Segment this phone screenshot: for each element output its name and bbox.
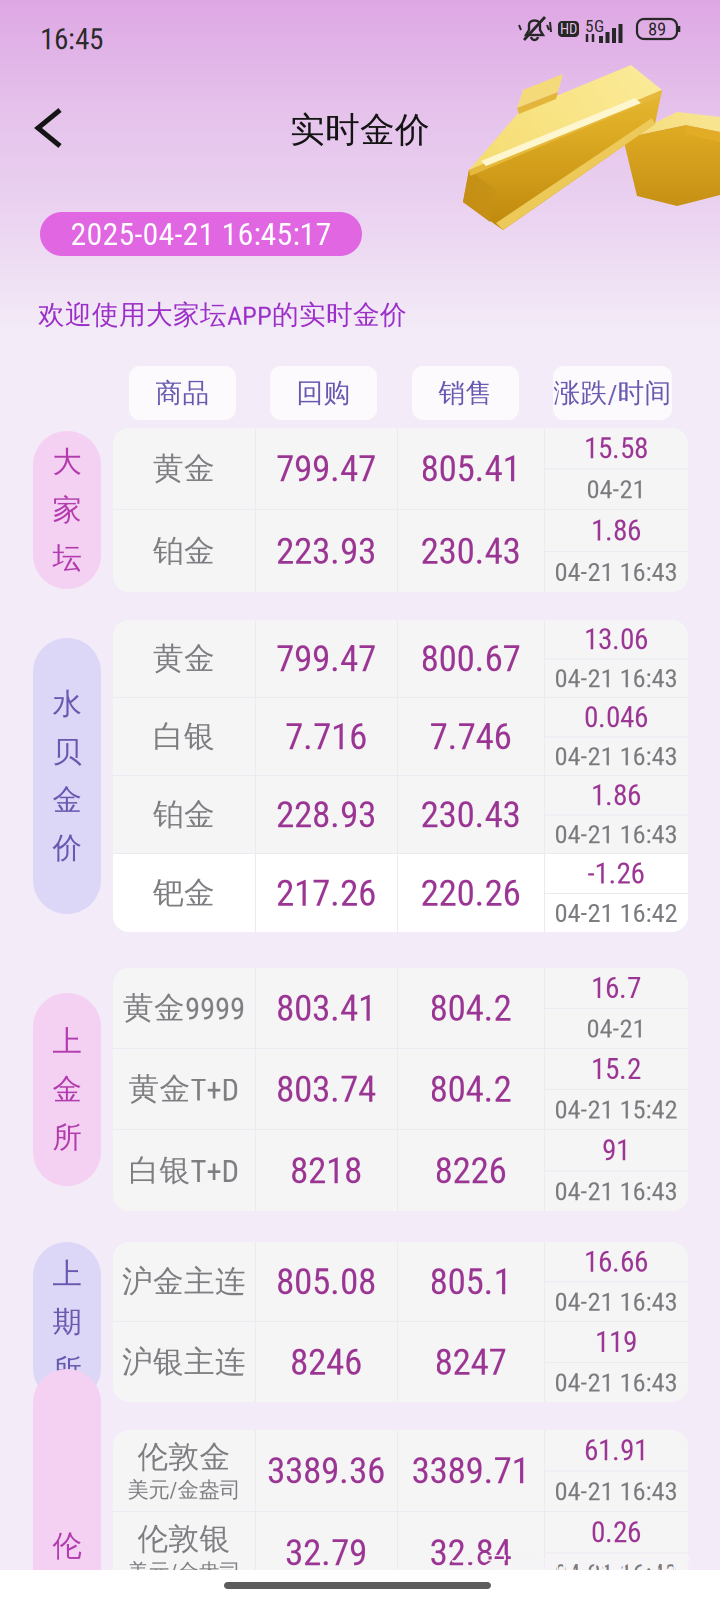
staticText: 坛 (52, 539, 81, 576)
staticText: 黄金T+D (128, 1070, 239, 1108)
staticText: 白银T+D (128, 1151, 239, 1190)
staticText: 230.43 (420, 529, 520, 573)
staticText: 欢迎使用大家坛APP的实时金价 (38, 298, 407, 332)
staticText: 美元/金盎司 (127, 1558, 240, 1585)
staticText: 13.06 (584, 622, 648, 656)
staticText: 钯金 (153, 874, 215, 912)
staticText: 价 (52, 829, 81, 866)
staticText: 803.41 (276, 986, 376, 1030)
staticText: 805.08 (276, 1260, 376, 1303)
staticText: 16.66 (584, 1245, 648, 1279)
staticText: 04-21 16:43 (554, 556, 677, 588)
staticText: 230.43 (420, 793, 520, 836)
staticText: 217.26 (276, 871, 376, 915)
staticText: 7.716 (285, 715, 367, 758)
staticText: 黄金 (153, 449, 215, 488)
staticText: 销售 (438, 376, 492, 410)
staticText: 沪金主连 (122, 1262, 246, 1301)
staticText: 大家坛@furong1107 (450, 1548, 691, 1585)
staticText: 所 (52, 1119, 81, 1156)
staticText: 805.41 (420, 447, 520, 490)
staticText: 804.2 (429, 986, 511, 1030)
staticText: 16:45 (40, 22, 103, 56)
button[interactable]: 回购 (270, 366, 377, 420)
staticText: 实时金价 (290, 108, 430, 152)
staticText: 04-21 16:43 (554, 1476, 677, 1507)
staticText: 黄金 (153, 639, 215, 678)
staticText: 04-21 16:43 (554, 1367, 677, 1398)
staticText: 伦敦金 (137, 1438, 230, 1476)
staticText: 800.67 (420, 637, 520, 680)
staticText: 04-21 (586, 474, 645, 505)
staticText: -1.26 (587, 856, 644, 891)
staticText: 8246 (290, 1340, 362, 1384)
staticText: 家 (52, 491, 81, 528)
staticText: 美元/金盎司 (127, 1476, 240, 1503)
staticText: 220.26 (420, 871, 520, 915)
button[interactable]: 销售 (412, 366, 519, 420)
staticText: 伦敦银 (137, 1520, 230, 1558)
staticText: 32.79 (285, 1531, 367, 1574)
staticText: 铂金 (153, 532, 215, 570)
staticText: 商品 (155, 376, 209, 410)
staticText: 223.93 (276, 529, 376, 573)
staticText: 89 (648, 18, 666, 40)
staticText: 119 (595, 1325, 637, 1359)
staticText: 228.93 (276, 793, 376, 836)
staticText: 04-21 16:42 (554, 897, 677, 929)
button[interactable]: Back (22, 98, 82, 158)
staticText: 7.746 (429, 715, 511, 758)
staticText: 贝 (52, 733, 81, 770)
staticText: 上 (52, 1023, 81, 1060)
staticText: 2025-04-21 16:45:17 (70, 215, 331, 253)
staticText: 15.58 (584, 431, 648, 465)
staticText: 799.47 (276, 447, 376, 490)
staticText: 04-21 16:43 (554, 663, 677, 694)
staticText: 61.91 (584, 1433, 648, 1467)
staticText: 1.86 (591, 778, 641, 812)
staticText: 04-21 16:43 (554, 1176, 677, 1207)
staticText: 8247 (434, 1340, 506, 1384)
staticText: 金 (52, 781, 81, 818)
staticText: 3389.36 (267, 1449, 385, 1492)
staticText: 黄金9999 (123, 989, 245, 1027)
staticText: 799.47 (276, 637, 376, 680)
staticText: 5G (585, 16, 604, 36)
staticText: HD (560, 20, 577, 38)
staticText: 白银 (153, 717, 215, 756)
staticText: 0.046 (584, 700, 648, 734)
staticText: 8218 (290, 1149, 362, 1192)
staticText: 大 (52, 444, 81, 481)
staticText: 32.84 (429, 1531, 511, 1574)
staticText: 15.2 (591, 1052, 641, 1086)
staticText: 805.1 (429, 1260, 511, 1303)
button[interactable]: 涨跌/时间 (553, 366, 672, 420)
staticText: 3389.71 (411, 1449, 529, 1492)
staticText: 8226 (434, 1149, 506, 1192)
staticText: 803.74 (276, 1067, 376, 1111)
button[interactable]: 商品 (129, 366, 236, 420)
staticText: 水 (52, 686, 81, 723)
staticText: 上 (52, 1256, 81, 1293)
staticText: 回购 (296, 376, 350, 410)
staticText: 04-21 16:43 (554, 741, 677, 772)
staticText: 04-21 16:43 (554, 1558, 677, 1589)
staticText: 金 (52, 1071, 81, 1108)
staticText: 涨跌/时间 (553, 376, 671, 410)
staticText: 04-21 16:43 (554, 1286, 677, 1317)
staticText: 16.7 (591, 971, 641, 1005)
staticText: 91 (602, 1133, 630, 1167)
staticText: 铂金 (153, 795, 215, 834)
staticText: 期 (52, 1303, 81, 1340)
staticText: 04-21 16:43 (554, 819, 677, 850)
staticText: 所 (52, 1351, 81, 1388)
staticText: 1.86 (591, 513, 641, 548)
staticText: 804.2 (429, 1067, 511, 1111)
staticText: 0.26 (591, 1515, 641, 1549)
staticText: 沪银主连 (122, 1343, 246, 1381)
staticText: 04-21 (586, 1013, 645, 1044)
staticText: 伦 (52, 1528, 81, 1565)
staticText: 04-21 15:42 (554, 1094, 677, 1125)
